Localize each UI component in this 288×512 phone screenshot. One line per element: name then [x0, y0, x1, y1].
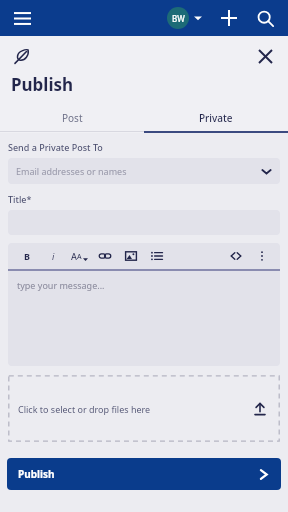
button[interactable]: Compose	[10, 44, 34, 68]
button[interactable]: Click to select or drop files here	[8, 375, 280, 442]
staticText: Post	[62, 111, 83, 125]
button[interactable]: Close	[252, 43, 278, 69]
button[interactable]: Create new	[216, 5, 242, 31]
button[interactable]: Search	[252, 5, 278, 31]
button[interactable]: Upload files	[250, 399, 270, 419]
staticText: Publish	[11, 73, 74, 96]
button[interactable]: Italic	[40, 243, 66, 269]
button[interactable]: Private	[144, 105, 288, 131]
button[interactable]: Font size	[66, 243, 92, 269]
staticText: Click to select or drop files here	[18, 403, 151, 415]
staticText: Title*	[8, 193, 32, 205]
staticText: Publish	[18, 467, 55, 481]
staticText: BW	[172, 13, 185, 24]
button[interactable]: More options	[249, 243, 275, 269]
staticText: A	[77, 252, 82, 262]
button[interactable]: Source code	[223, 243, 249, 269]
button[interactable]: Account	[165, 7, 204, 29]
button[interactable]: Email addresses or names	[8, 158, 280, 184]
staticText: i	[52, 250, 55, 262]
button[interactable]: Bulleted list	[144, 243, 170, 269]
button[interactable]: Menu	[8, 4, 36, 32]
staticText: Email addresses or names	[16, 165, 127, 177]
staticText: A	[71, 250, 77, 262]
button[interactable]: Insert link	[92, 243, 118, 269]
staticText: Private	[199, 111, 233, 125]
staticText: Send a Private Post To	[8, 141, 103, 153]
button[interactable]: Post	[0, 105, 144, 131]
button[interactable]: type your message...	[8, 271, 280, 366]
button[interactable]: Bold	[14, 243, 40, 269]
button[interactable]: Insert image	[118, 243, 144, 269]
staticText: type your message...	[17, 279, 105, 291]
staticText: B	[24, 250, 30, 262]
button[interactable]: Publish	[7, 458, 281, 490]
